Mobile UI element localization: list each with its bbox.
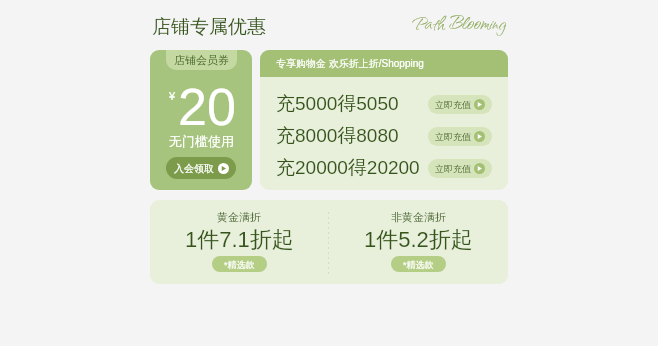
staticText: Path Blooming	[412, 9, 506, 37]
staticText: 店铺会员券	[174, 53, 229, 67]
button[interactable]: 店铺会员券	[150, 50, 252, 190]
staticText: 立即充值	[435, 131, 471, 142]
staticText: 黄金满折	[217, 210, 261, 224]
staticText: 专享购物金 欢乐折上折/Shopping	[276, 57, 424, 70]
button[interactable]: 立即充值	[428, 127, 492, 146]
button[interactable]: 立即充值	[428, 159, 492, 178]
staticText: 无门槛使用	[169, 133, 234, 149]
button[interactable]: *精选款	[391, 256, 446, 272]
staticText: 20	[178, 78, 236, 136]
staticText: 立即充值	[435, 99, 471, 110]
staticText: 充20000得20200	[276, 156, 420, 180]
staticText: 充5000得5050	[276, 92, 399, 116]
staticText: 充8000得8080	[276, 124, 399, 148]
button[interactable]: 非黄金满折	[329, 200, 508, 284]
button[interactable]: 黄金满折	[150, 200, 328, 284]
button[interactable]: 入会领取	[166, 157, 236, 179]
staticText: ¥	[169, 90, 176, 102]
button[interactable]: *精选款	[212, 256, 267, 272]
staticText: 1件5.2折起	[364, 226, 473, 254]
button[interactable]: 立即充值	[428, 95, 492, 114]
staticText: 入会领取	[174, 162, 214, 175]
staticText: *精选款	[224, 259, 255, 270]
staticText: 立即充值	[435, 163, 471, 174]
staticText: 1件7.1折起	[185, 226, 294, 254]
staticText: 店铺专属优惠	[152, 15, 266, 39]
staticText: 非黄金满折	[391, 210, 446, 224]
staticText: *精选款	[403, 259, 434, 270]
